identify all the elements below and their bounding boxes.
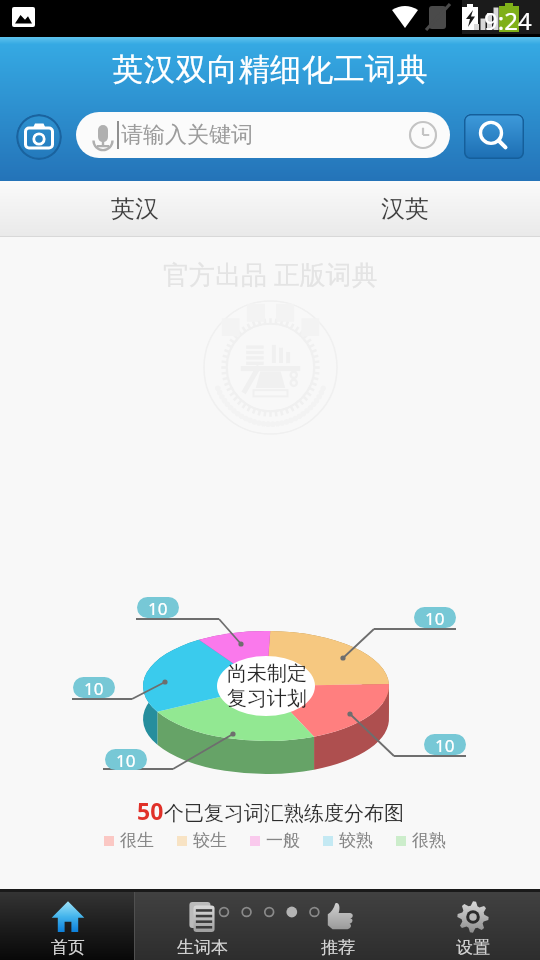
button[interactable]: 设置: [405, 892, 540, 960]
staticText: 官方出品 正版词典: [163, 256, 378, 292]
staticText: 很熟: [412, 830, 446, 851]
staticText: 较生: [193, 830, 227, 851]
staticText: 推荐: [321, 937, 355, 958]
staticText: 9:24: [484, 4, 532, 37]
staticText: 英汉双向精细化工词典: [112, 50, 428, 89]
staticText: 一般: [266, 830, 300, 851]
staticText: 10: [435, 734, 455, 755]
staticText: 个已复习词汇熟练度分布图: [164, 801, 404, 826]
button[interactable]: Search: [464, 114, 524, 159]
staticText: 较熟: [339, 830, 373, 851]
staticText: 50: [137, 795, 164, 826]
staticText: 10: [148, 597, 168, 618]
button[interactable]: Camera search: [16, 114, 62, 160]
button[interactable]: 生词本: [135, 892, 270, 960]
staticText: 10: [116, 749, 136, 770]
staticText: 汉英: [381, 194, 429, 224]
staticText: 尚未制定: [227, 661, 307, 686]
button[interactable]: 首页: [0, 892, 135, 960]
staticText: 请输入关键词: [121, 121, 253, 149]
staticText: 首页: [51, 937, 85, 958]
staticText: 10: [84, 677, 104, 698]
button[interactable]: 请输入关键词: [76, 112, 450, 158]
staticText: 英汉: [111, 194, 159, 224]
staticText: 复习计划: [227, 686, 307, 711]
button[interactable]: 推荐: [270, 892, 405, 960]
staticText: 生词本: [177, 937, 228, 958]
button[interactable]: 英汉: [0, 181, 270, 237]
staticText: 很生: [120, 830, 154, 851]
staticText: 10: [425, 607, 445, 628]
button[interactable]: 汉英: [270, 181, 540, 237]
staticText: 设置: [456, 937, 490, 958]
